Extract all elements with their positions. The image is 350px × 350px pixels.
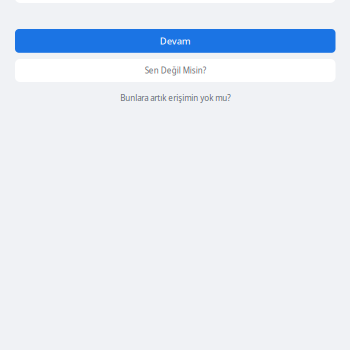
staticText: Devam [160, 35, 191, 47]
staticText: Bunlara artık erişimin yok mu? [120, 93, 230, 103]
button[interactable]: Sen Değil Misin? [15, 59, 335, 82]
staticText: Sen Değil Misin? [145, 65, 206, 76]
button[interactable]: Devam [15, 29, 335, 53]
button[interactable]: Bunlara artık erişimin yok mu? [15, 91, 335, 105]
